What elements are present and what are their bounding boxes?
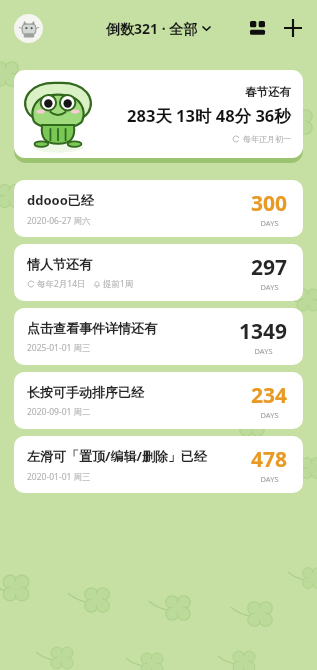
button[interactable]: 长按可手动排序已经 (14, 372, 303, 429)
staticText: 234 (251, 381, 288, 410)
staticText: 每年2月14日 (37, 278, 86, 290)
button[interactable]: Switch layout (239, 10, 275, 46)
staticText: 春节还有 (245, 85, 291, 99)
staticText: DAYS (260, 474, 279, 484)
staticText: 每年正月初一 (243, 134, 291, 144)
staticText: 2020-09-01 周二 (27, 406, 91, 418)
staticText: 300 (251, 189, 288, 218)
staticText: 提前1周 (103, 278, 134, 290)
button[interactable]: 情人节还有 (14, 244, 303, 301)
button[interactable]: 春节还有 (14, 70, 303, 158)
staticText: 长按可手动排序已经 (27, 384, 144, 400)
staticText: 点击查看事件详情还有 (27, 320, 157, 336)
button[interactable]: 左滑可「置顶/编辑/删除」已经 (14, 436, 303, 493)
button[interactable]: Profile (14, 14, 43, 43)
button[interactable]: 点击查看事件详情还有 (14, 308, 303, 365)
staticText: 倒数321 · 全部 (106, 19, 198, 38)
staticText: 2020-06-27 周六 (27, 215, 91, 227)
button[interactable]: 倒数321 · 全部 (100, 15, 217, 42)
staticText: ddooo已经 (27, 191, 94, 209)
button[interactable]: ddooo已经 (14, 180, 303, 237)
staticText: 1349 (239, 317, 288, 346)
staticText: 283天 13时 48分 36秒 (127, 104, 291, 127)
staticText: 2020-01-01 周三 (27, 471, 91, 483)
staticText: 左滑可「置顶/编辑/删除」已经 (27, 447, 207, 465)
staticText: 情人节还有 (27, 256, 92, 272)
staticText: DAYS (254, 346, 273, 356)
staticText: DAYS (260, 410, 279, 420)
staticText: 478 (251, 445, 288, 474)
staticText: DAYS (260, 282, 279, 292)
staticText: 297 (251, 253, 288, 282)
staticText: 2025-01-01 周三 (27, 342, 91, 354)
button[interactable]: Add countdown (275, 10, 311, 46)
staticText: DAYS (260, 218, 279, 228)
